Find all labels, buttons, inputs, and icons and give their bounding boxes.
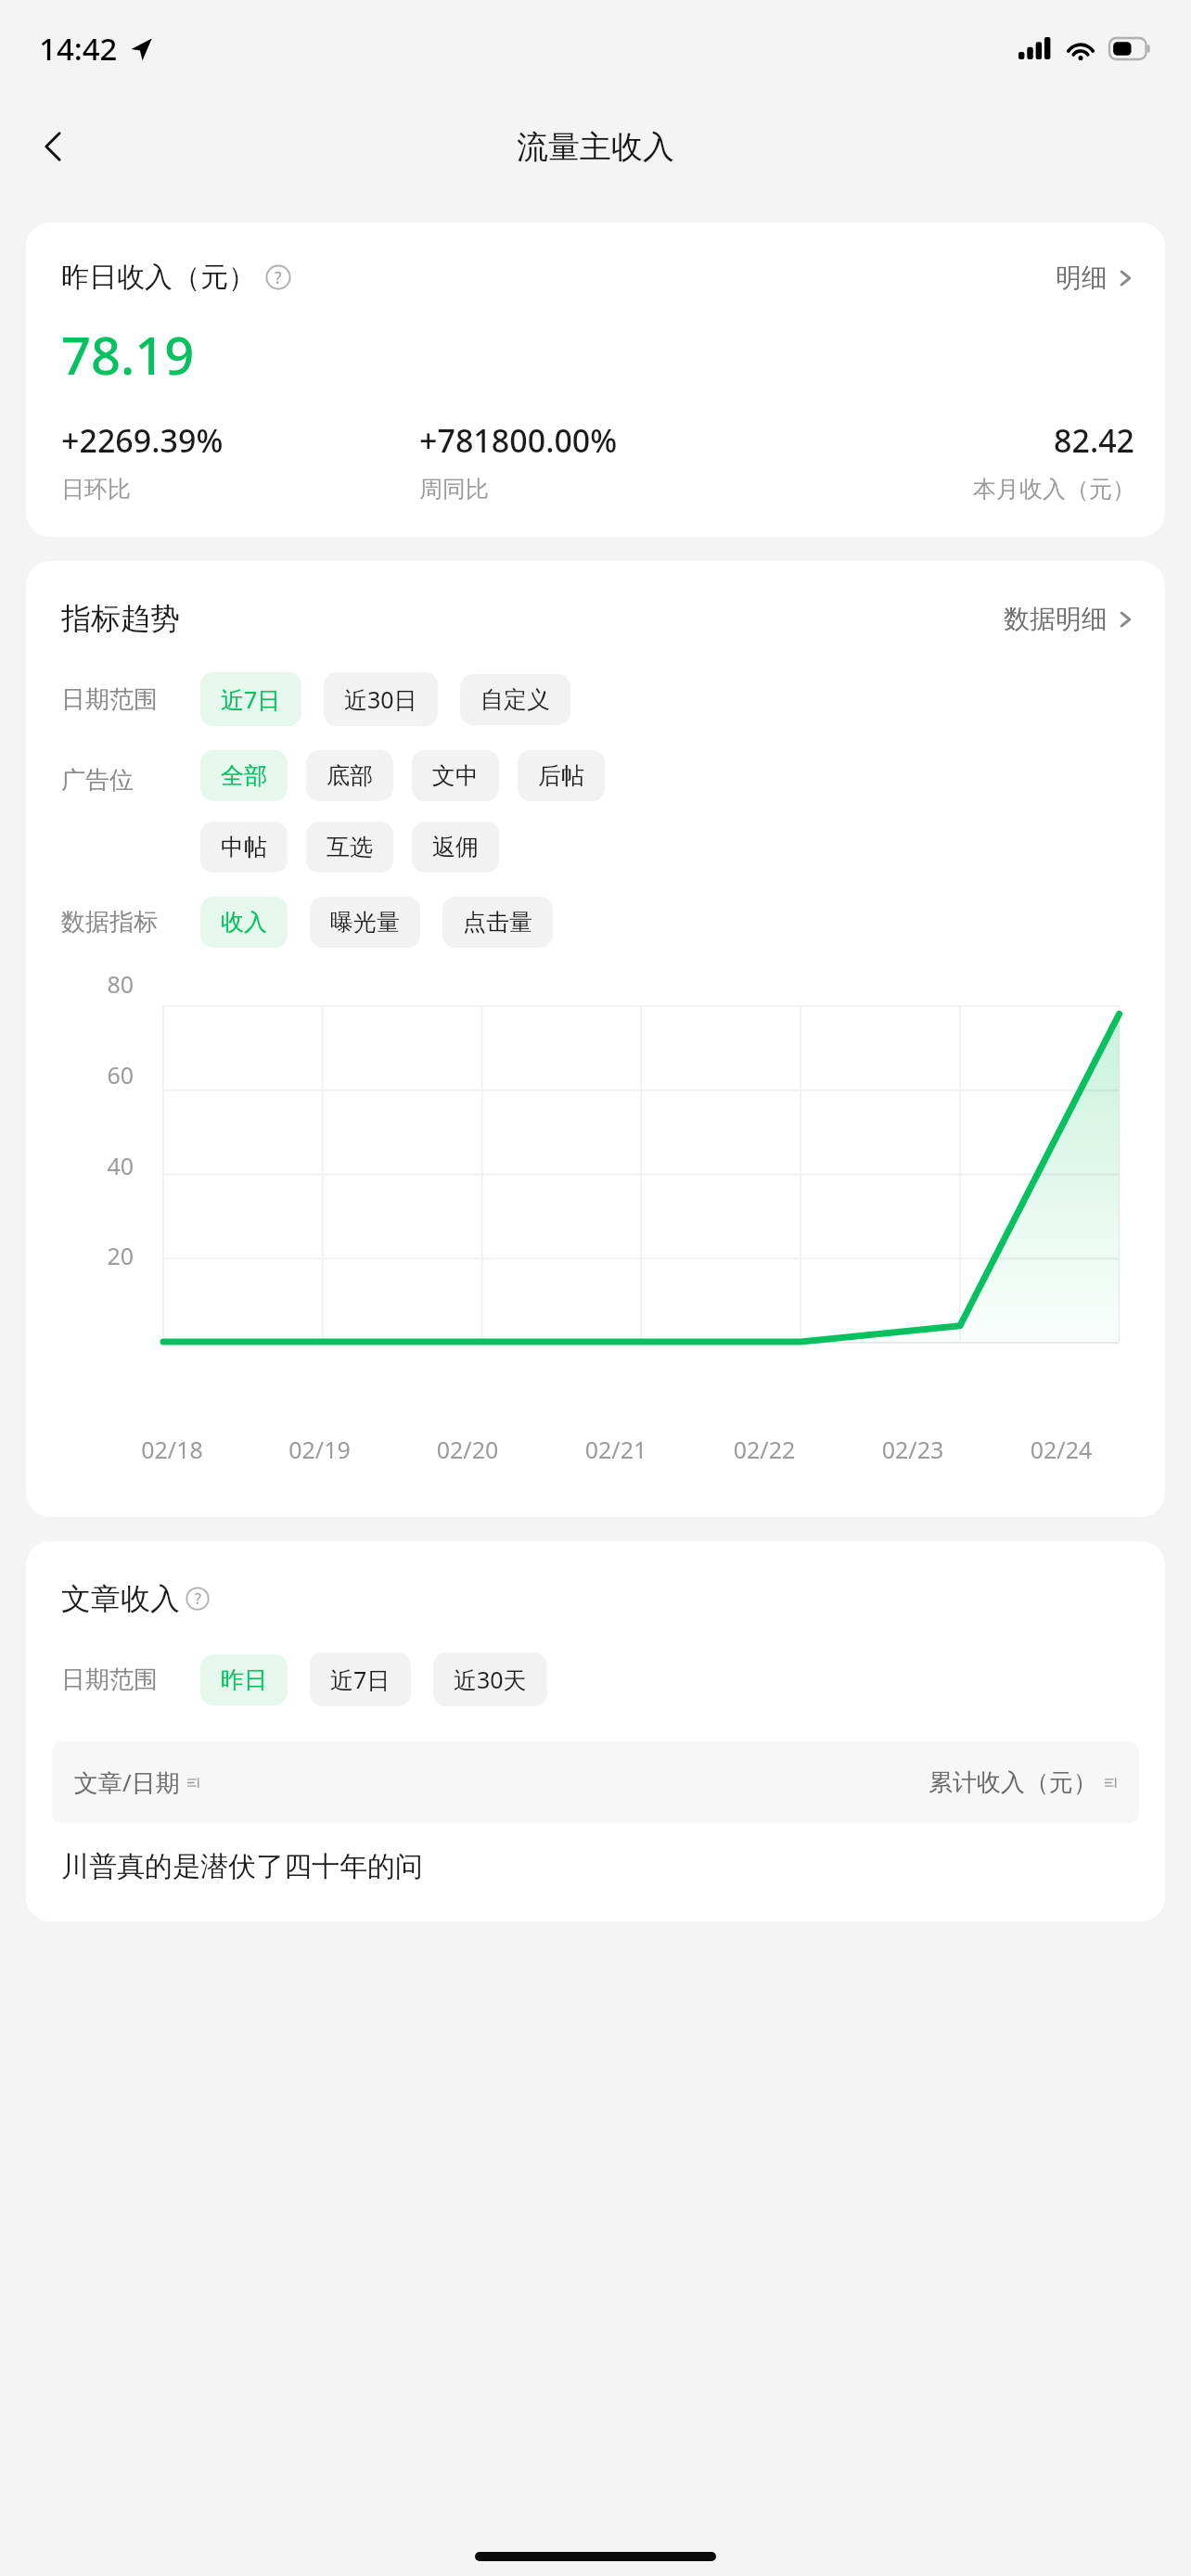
staticText: 近30日 — [344, 683, 417, 715]
button[interactable]: 曝光量 — [310, 897, 420, 948]
button[interactable]: 文章/日期 — [74, 1766, 199, 1799]
staticText: 中帖 — [221, 833, 267, 861]
staticText: 日期范围 — [61, 684, 158, 715]
staticText: 40 — [61, 1150, 134, 1181]
button[interactable]: 数据明细 — [1004, 603, 1135, 635]
staticText: 广告位 — [61, 765, 134, 796]
staticText: 60 — [61, 1059, 134, 1090]
staticText: 78.19 — [61, 319, 195, 389]
button[interactable]: 自定义 — [460, 674, 570, 725]
staticText: 02/18 — [98, 1434, 246, 1465]
staticText: +781800.00% — [419, 419, 618, 462]
staticText: 底部 — [327, 761, 373, 790]
button[interactable]: 收入 — [200, 897, 288, 948]
staticText: 近7日 — [330, 1664, 391, 1695]
staticText: 日环比 — [61, 475, 131, 504]
staticText: 明细 — [1056, 261, 1108, 294]
button[interactable]: 昨日 — [200, 1654, 288, 1705]
staticText: 本月收入（元） — [973, 475, 1135, 504]
staticText: 14:42 — [39, 28, 118, 70]
staticText: 点击量 — [463, 908, 532, 937]
staticText: 近7日 — [221, 683, 281, 715]
staticText: 02/19 — [246, 1434, 393, 1465]
staticText: 80 — [61, 968, 134, 1000]
staticText: 文章收入 — [61, 1580, 180, 1617]
staticText: +2269.39% — [61, 419, 224, 462]
staticText: 昨日收入（元） — [61, 260, 256, 295]
staticText: 数据明细 — [1004, 603, 1108, 635]
staticText: 川普真的是潜伏了四十年的问 — [61, 1849, 423, 1884]
button[interactable]: 底部 — [306, 750, 393, 801]
staticText: 02/24 — [987, 1434, 1135, 1465]
button[interactable]: 全部 — [200, 750, 288, 801]
button[interactable]: 互选 — [306, 822, 393, 873]
staticText: 文章/日期 — [74, 1766, 180, 1799]
button[interactable]: 中帖 — [200, 822, 288, 873]
button[interactable]: Back — [20, 113, 87, 180]
button[interactable]: 文中 — [412, 750, 499, 801]
staticText: 后帖 — [538, 761, 584, 790]
staticText: 昨日 — [221, 1665, 267, 1694]
staticText: 数据指标 — [61, 907, 158, 937]
staticText: 指标趋势 — [61, 600, 180, 637]
staticText: 自定义 — [480, 685, 550, 714]
staticText: 02/20 — [393, 1434, 542, 1465]
button[interactable]: 累计收入（元） — [928, 1767, 1117, 1798]
button[interactable]: 明细 — [1056, 261, 1135, 294]
staticText: 02/22 — [690, 1434, 839, 1465]
staticText: 文中 — [432, 761, 479, 790]
button[interactable]: 近30天 — [433, 1652, 547, 1706]
button[interactable]: 近7日 — [200, 672, 301, 726]
staticText: 收入 — [221, 908, 267, 937]
button[interactable]: 点击量 — [442, 897, 553, 948]
button[interactable]: 后帖 — [518, 750, 605, 801]
staticText: ? — [275, 266, 282, 288]
staticText: ? — [195, 1588, 201, 1609]
staticText: 02/21 — [542, 1434, 690, 1465]
staticText: 累计收入（元） — [928, 1767, 1097, 1798]
staticText: 日期范围 — [61, 1664, 158, 1695]
staticText: 全部 — [221, 761, 267, 790]
button[interactable]: 近30日 — [324, 672, 438, 726]
staticText: 近30天 — [454, 1664, 527, 1695]
button[interactable]: 返佣 — [412, 822, 499, 873]
button[interactable]: 近7日 — [310, 1652, 411, 1706]
staticText: 20 — [61, 1240, 134, 1271]
staticText: 流量主收入 — [517, 127, 674, 167]
staticText: 02/23 — [839, 1434, 987, 1465]
staticText: 周同比 — [419, 475, 489, 504]
staticText: 互选 — [327, 833, 373, 861]
staticText: 返佣 — [432, 833, 479, 861]
staticText: 曝光量 — [330, 908, 400, 937]
staticText: 82.42 — [1054, 419, 1135, 462]
